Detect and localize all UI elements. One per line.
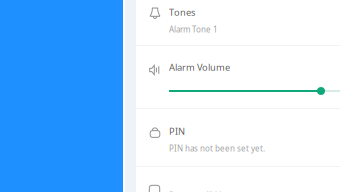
staticText: Alarm Volume xyxy=(169,61,230,73)
button[interactable]: Power-off Alarm xyxy=(136,167,340,192)
staticText: Tones xyxy=(169,6,195,18)
staticText: PIN has not been set yet. xyxy=(169,143,265,154)
button[interactable]: Tones xyxy=(136,0,340,45)
button[interactable]: PIN xyxy=(136,109,340,167)
staticText: Power-off Alarm xyxy=(169,189,239,192)
button[interactable]: Alarm Volume xyxy=(136,46,340,109)
staticText: PIN xyxy=(169,125,185,137)
staticText: Alarm Tone 1 xyxy=(169,24,218,35)
